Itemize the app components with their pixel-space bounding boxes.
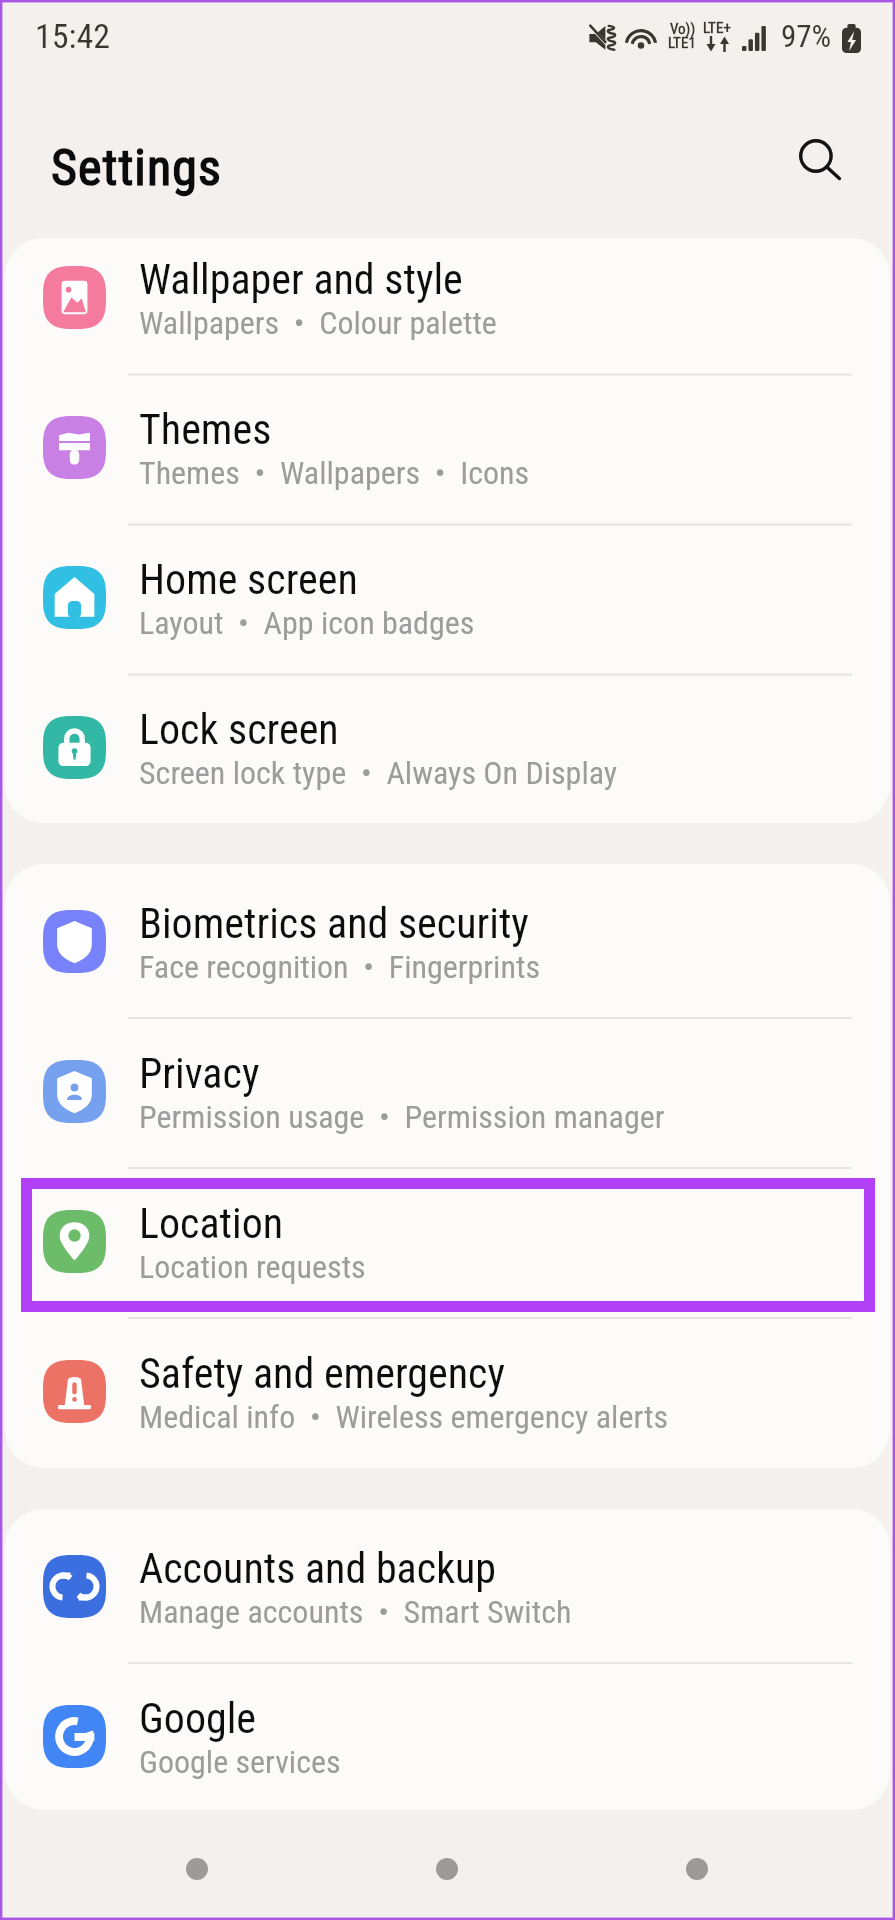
staticText: Wallpaper and style	[139, 255, 463, 304]
staticText: Accounts and backup	[139, 1544, 497, 1593]
button[interactable]: Wallpaper and style	[5, 238, 890, 372]
staticText: Lock screen	[139, 705, 339, 754]
staticText: Location	[139, 1199, 284, 1248]
staticText: Biometrics and security	[139, 899, 529, 948]
staticText: Location requests	[139, 1248, 366, 1286]
button[interactable]: Google	[5, 1661, 890, 1810]
staticText: Manage accounts • Smart Switch	[139, 1593, 572, 1631]
staticText: Themes • Wallpapers • Icons	[139, 454, 530, 492]
button[interactable]: Recents	[161, 1833, 233, 1905]
button[interactable]: Location highlighted	[21, 1178, 875, 1312]
staticText: Vo))	[670, 20, 696, 38]
button[interactable]: Search	[778, 119, 864, 205]
staticText: Privacy	[139, 1049, 260, 1098]
button[interactable]: Accounts and backup	[5, 1511, 890, 1661]
staticText: Screen lock type • Always On Display	[139, 754, 618, 792]
staticText: LTE1	[668, 34, 696, 52]
staticText: Settings	[51, 139, 222, 198]
staticText: Layout • App icon badges	[139, 604, 475, 642]
button[interactable]: Location	[5, 1166, 890, 1316]
button[interactable]: Themes	[5, 372, 890, 522]
staticText: Face recognition • Fingerprints	[139, 948, 540, 986]
staticText: Themes	[139, 405, 272, 454]
staticText: Permission usage • Permission manager	[139, 1098, 665, 1136]
button[interactable]: Safety and emergency	[5, 1316, 890, 1466]
staticText: Wallpapers • Colour palette	[139, 304, 497, 342]
button[interactable]: Biometrics and security	[5, 866, 890, 1016]
staticText: 15:42	[35, 16, 111, 56]
staticText: Safety and emergency	[139, 1349, 505, 1398]
button[interactable]: Back	[661, 1833, 733, 1905]
button[interactable]: Lock screen	[5, 672, 890, 822]
button[interactable]: Home	[411, 1833, 483, 1905]
button[interactable]: Home screen	[5, 522, 890, 672]
staticText: Home screen	[139, 555, 358, 604]
staticText: Google	[139, 1694, 257, 1743]
button[interactable]: Privacy	[5, 1016, 890, 1166]
staticText: Medical info • Wireless emergency alerts	[139, 1398, 668, 1436]
staticText: LTE+	[703, 19, 731, 37]
staticText: 97%	[781, 18, 832, 54]
staticText: Google services	[139, 1743, 341, 1781]
